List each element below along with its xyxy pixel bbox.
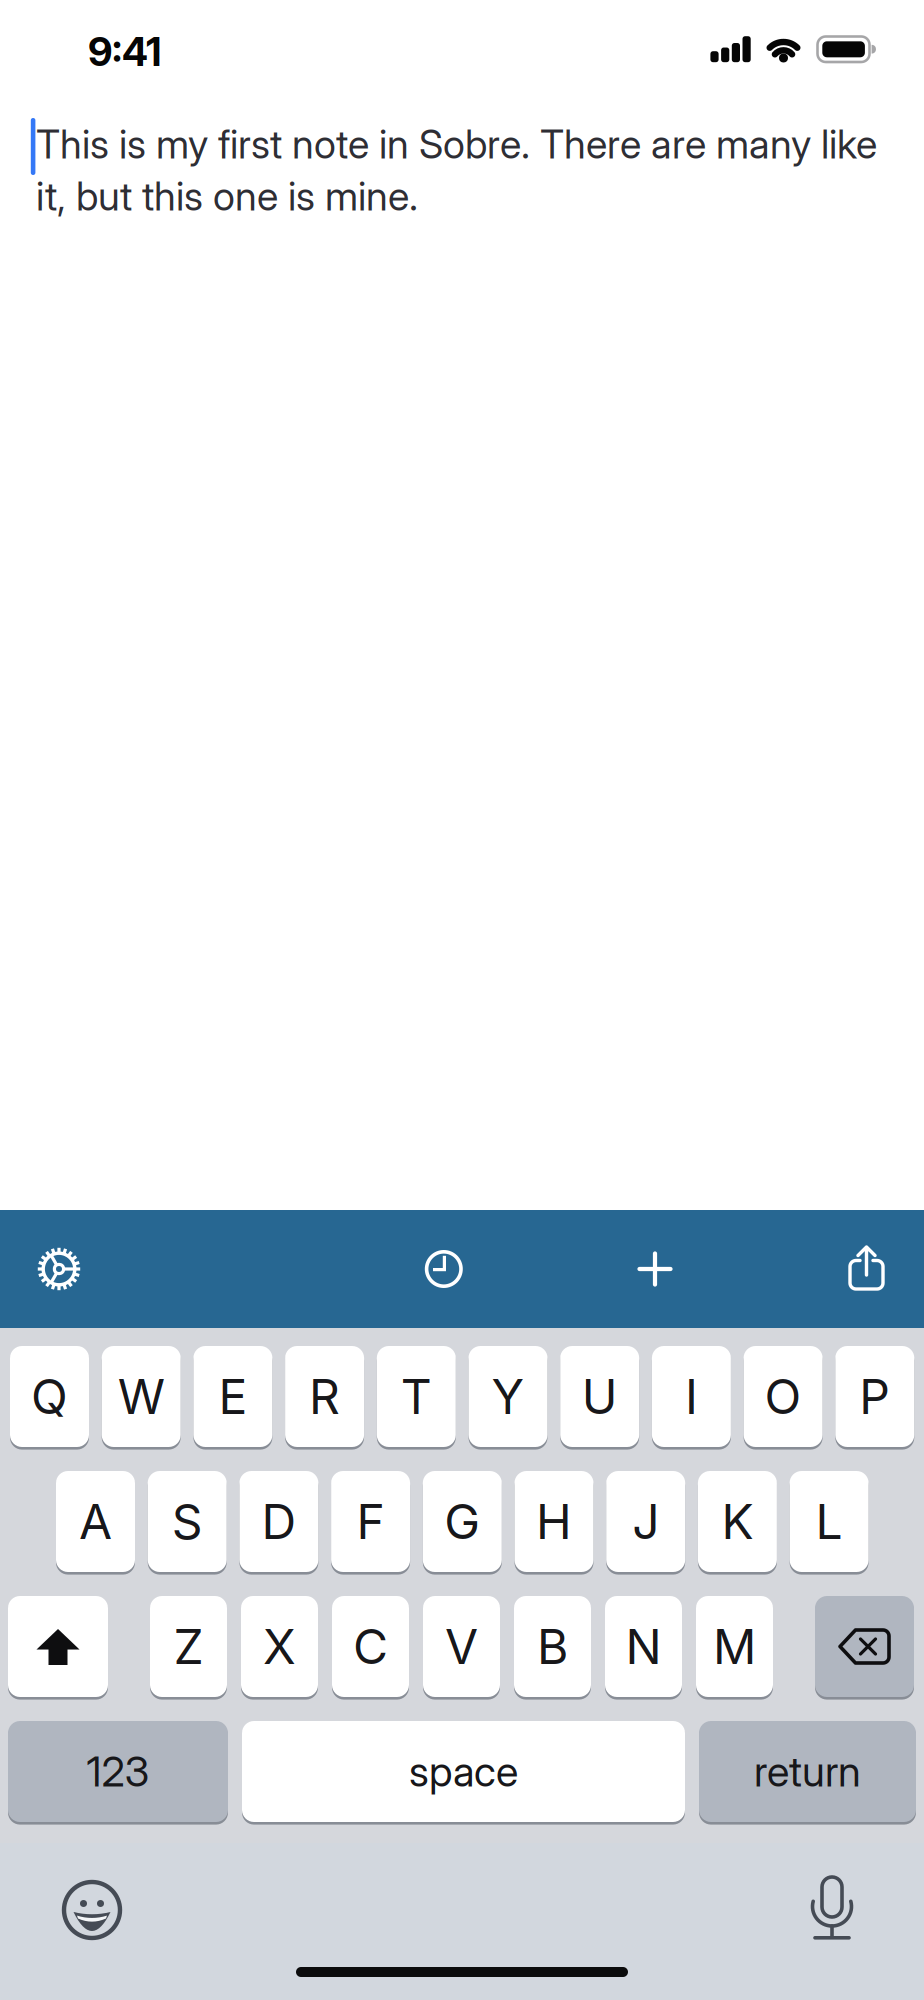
button[interactable]: space xyxy=(242,1721,685,1822)
staticText: T xyxy=(401,1367,432,1426)
button[interactable]: A xyxy=(56,1471,135,1572)
staticText: E xyxy=(218,1367,247,1426)
staticText: U xyxy=(582,1367,618,1426)
button[interactable]: 123 xyxy=(8,1721,228,1822)
button[interactable]: J xyxy=(606,1471,685,1572)
staticText: S xyxy=(172,1492,203,1551)
staticText: J xyxy=(632,1492,659,1551)
staticText: V xyxy=(445,1617,478,1676)
button[interactable]: R xyxy=(285,1346,364,1447)
staticText: L xyxy=(816,1492,843,1551)
staticText: K xyxy=(721,1492,753,1551)
staticText: Z xyxy=(173,1617,203,1676)
staticText: Y xyxy=(491,1367,524,1426)
button[interactable]: T xyxy=(377,1346,456,1447)
button[interactable]: W xyxy=(102,1346,181,1447)
staticText: O xyxy=(765,1367,802,1426)
button[interactable]: History xyxy=(406,1231,482,1307)
button[interactable]: Settings xyxy=(21,1231,97,1307)
button[interactable]: B xyxy=(514,1596,591,1697)
staticText: This is my first note in Sobre. There ar… xyxy=(36,120,877,168)
button[interactable]: Share xyxy=(828,1231,904,1307)
staticText: C xyxy=(353,1617,388,1676)
button[interactable]: G xyxy=(423,1471,502,1572)
staticText: it, but this one is mine. xyxy=(36,172,418,220)
button[interactable]: H xyxy=(514,1471,593,1572)
button[interactable]: L xyxy=(790,1471,869,1572)
button[interactable]: Emoji xyxy=(54,1872,130,1948)
staticText: I xyxy=(685,1367,698,1426)
button[interactable]: Delete xyxy=(815,1596,914,1697)
button[interactable]: X xyxy=(241,1596,318,1697)
button[interactable]: S xyxy=(148,1471,227,1572)
staticText: N xyxy=(625,1617,661,1676)
staticText: F xyxy=(357,1492,385,1551)
staticText: return xyxy=(754,1746,861,1796)
button[interactable]: return xyxy=(699,1721,916,1822)
staticText: A xyxy=(79,1492,112,1551)
staticText: G xyxy=(444,1492,480,1551)
button[interactable]: N xyxy=(605,1596,682,1697)
button[interactable]: K xyxy=(698,1471,777,1572)
button[interactable]: O xyxy=(744,1346,823,1447)
staticText: D xyxy=(261,1492,296,1551)
staticText: space xyxy=(409,1746,518,1796)
button[interactable]: M xyxy=(696,1596,773,1697)
button[interactable]: Q xyxy=(10,1346,89,1447)
button[interactable]: Dictate xyxy=(794,1869,870,1945)
button[interactable]: U xyxy=(560,1346,639,1447)
staticText: W xyxy=(118,1367,165,1426)
button[interactable]: Y xyxy=(468,1346,547,1447)
staticText: X xyxy=(263,1617,296,1676)
staticText: 9:41 xyxy=(88,28,162,76)
button[interactable]: Shift xyxy=(8,1596,108,1697)
button[interactable]: F xyxy=(331,1471,410,1572)
staticText: B xyxy=(537,1617,568,1676)
staticText: R xyxy=(309,1367,340,1426)
button[interactable]: New note xyxy=(617,1231,693,1307)
staticText: 123 xyxy=(86,1746,149,1796)
button[interactable]: P xyxy=(835,1346,914,1447)
button[interactable]: E xyxy=(193,1346,272,1447)
staticText: H xyxy=(536,1492,572,1551)
button[interactable]: Z xyxy=(150,1596,227,1697)
button[interactable]: I xyxy=(652,1346,731,1447)
button[interactable]: V xyxy=(423,1596,500,1697)
button[interactable]: D xyxy=(239,1471,318,1572)
button[interactable]: C xyxy=(332,1596,409,1697)
staticText: P xyxy=(859,1367,890,1426)
staticText: M xyxy=(713,1617,756,1676)
staticText: Q xyxy=(31,1367,68,1426)
